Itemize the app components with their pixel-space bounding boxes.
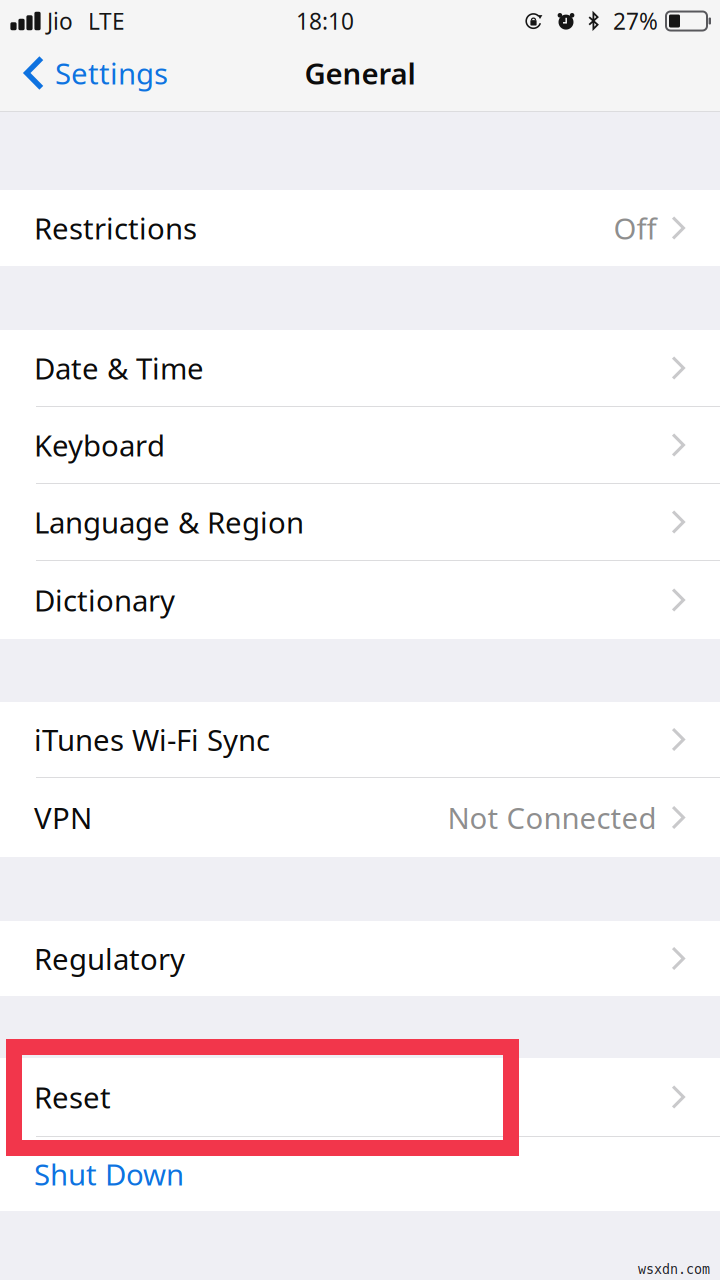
staticText: Keyboard [34,425,165,464]
button[interactable]: Shut Down [0,1137,720,1211]
button[interactable]: Language & Region [0,484,720,561]
button[interactable]: Date & Time [0,330,720,407]
staticText: Date & Time [34,348,204,387]
button[interactable]: Keyboard [0,407,720,484]
button[interactable]: iTunes Wi-Fi Sync [0,702,720,778]
button[interactable]: Restrictions [0,190,720,266]
button[interactable]: Regulatory [0,921,720,996]
staticText: Not Connected [447,798,656,837]
staticText: Language & Region [34,502,304,541]
staticText: Off [613,208,656,247]
staticText: Shut Down [34,1154,184,1193]
staticText: Dictionary [34,580,175,619]
button[interactable]: Settings [0,42,182,104]
staticText: Restrictions [34,208,197,247]
staticText: iTunes Wi-Fi Sync [34,720,270,759]
staticText: General [304,53,415,92]
staticText: Regulatory [34,939,185,978]
button[interactable]: Dictionary [0,561,720,639]
staticText: Settings [55,53,168,92]
staticText: wsxdn.com [638,1262,710,1277]
staticText: Jio [47,6,73,36]
button[interactable]: VPN [0,778,720,857]
button[interactable]: Reset [0,1058,720,1137]
staticText: VPN [34,798,92,837]
staticText: 18:10 [296,6,354,36]
staticText: 27% [613,6,658,36]
staticText: Reset [34,1077,111,1116]
staticText: LTE [88,6,125,36]
